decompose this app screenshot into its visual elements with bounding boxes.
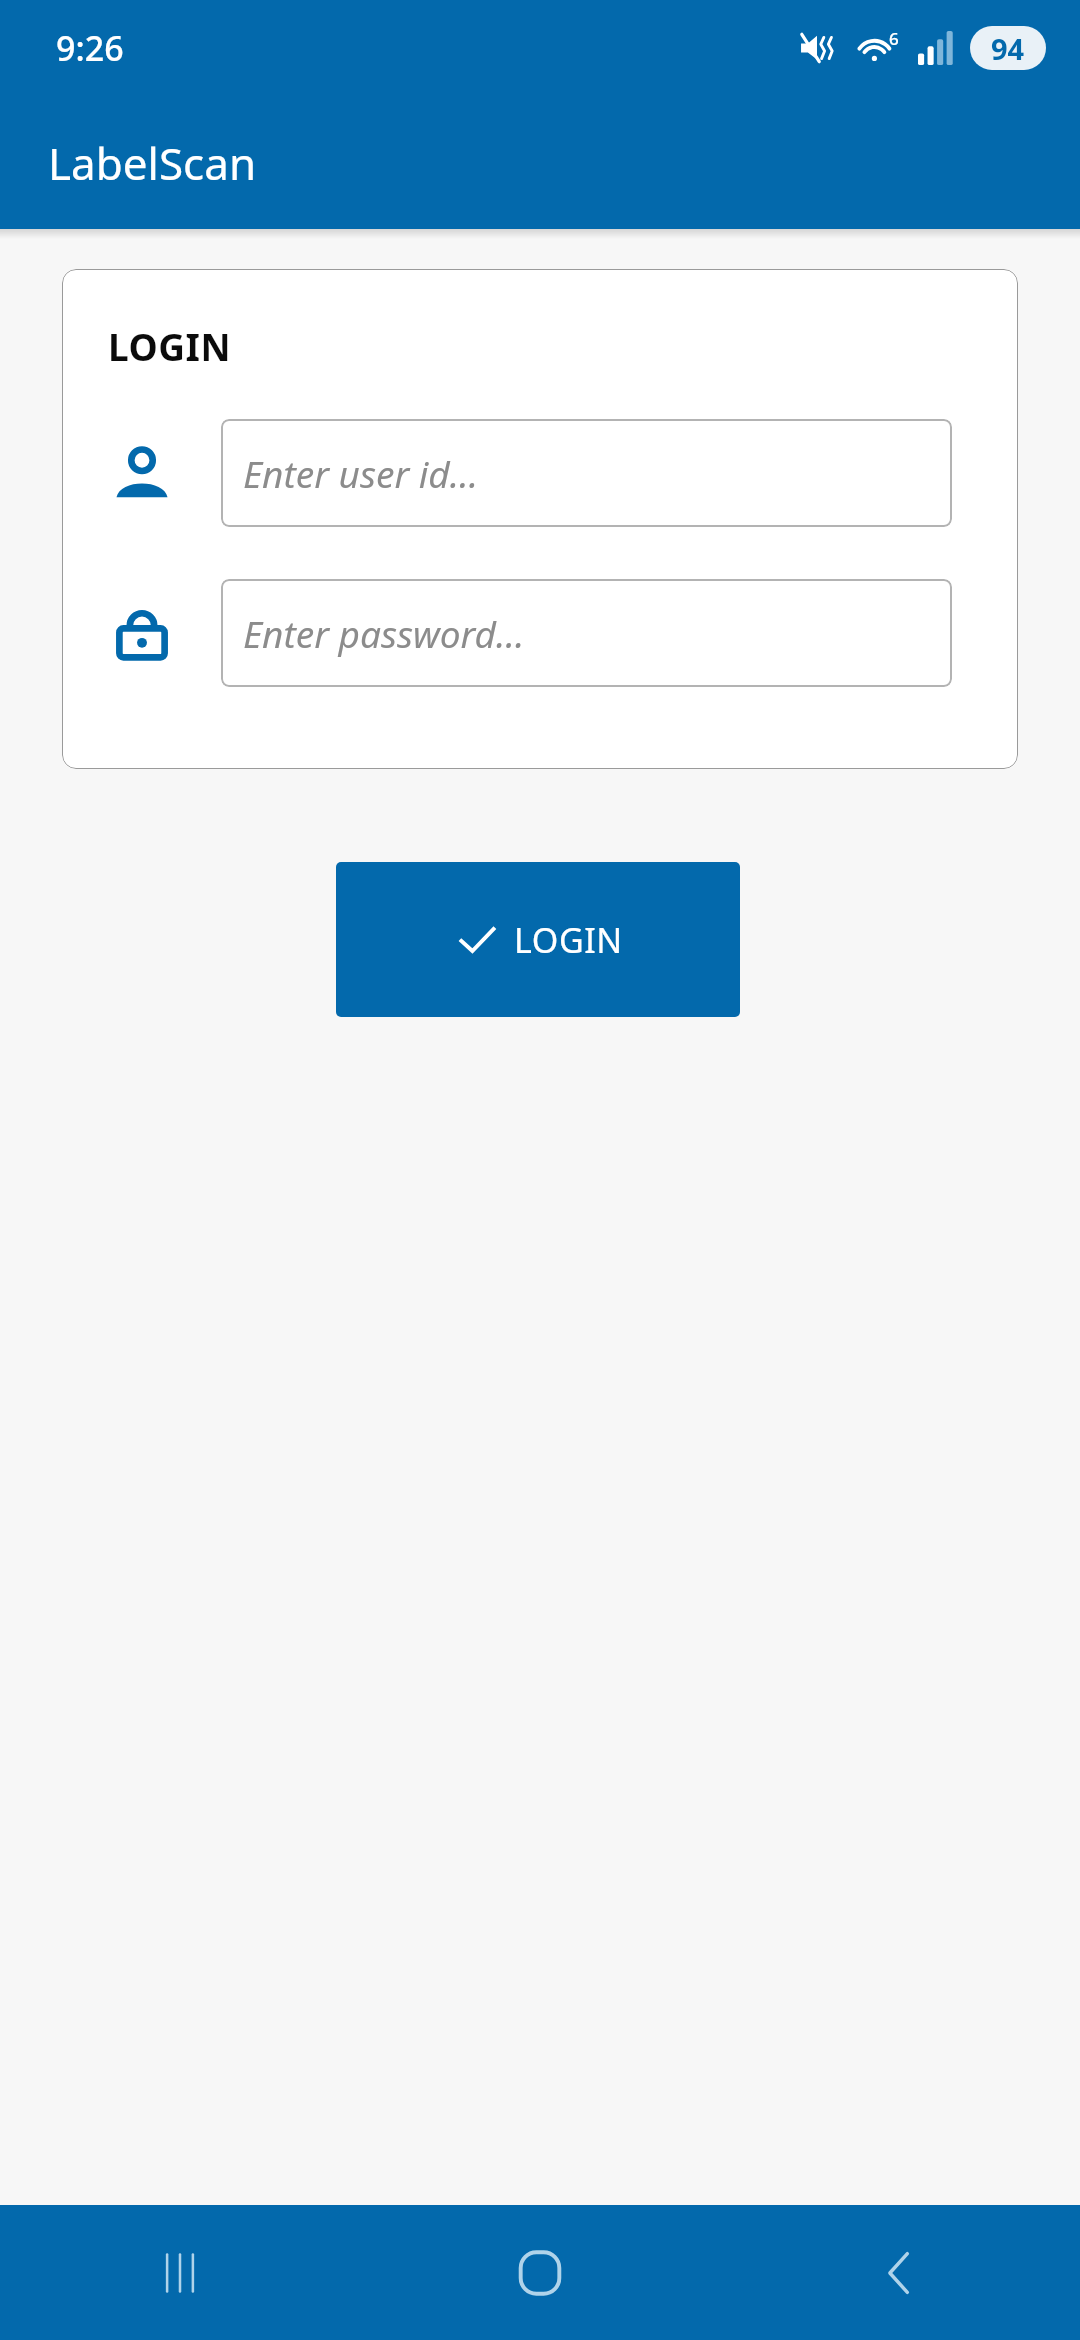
button[interactable]: Home: [360, 2205, 720, 2340]
button[interactable]: Recents: [0, 2205, 360, 2340]
button[interactable]: Enter user id...: [221, 419, 952, 527]
staticText: 94: [991, 29, 1025, 68]
staticText: LabelScan: [48, 133, 257, 193]
button[interactable]: LOGIN: [336, 862, 740, 1017]
other: Password: [62, 579, 221, 687]
staticText: 6: [889, 27, 899, 50]
staticText: LOGIN: [514, 917, 623, 963]
staticText: LOGIN: [108, 321, 231, 371]
staticText: 9:26: [56, 25, 124, 71]
button[interactable]: Enter password...: [221, 579, 952, 687]
other: User id: [62, 419, 221, 527]
staticText: Enter user id...: [243, 448, 479, 498]
button[interactable]: Back: [720, 2205, 1080, 2340]
staticText: Enter password...: [243, 608, 525, 658]
